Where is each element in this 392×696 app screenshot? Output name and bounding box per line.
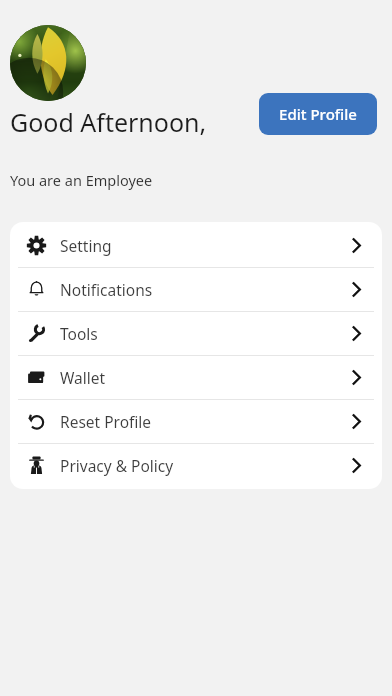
button[interactable]: Privacy & Policy xyxy=(10,444,382,487)
staticText: Good Afternoon, xyxy=(10,105,207,139)
staticText: Notifications xyxy=(60,279,153,300)
button[interactable]: Notifications xyxy=(10,268,382,311)
staticText: You are an Employee xyxy=(10,170,153,190)
staticText: Tools xyxy=(60,323,98,344)
button[interactable]: Wallet xyxy=(10,356,382,399)
staticText: Setting xyxy=(60,235,112,256)
staticText: Wallet xyxy=(60,367,106,388)
button[interactable]: Reset Profile xyxy=(10,400,382,443)
button[interactable]: Profile photo xyxy=(10,25,86,101)
staticText: Privacy & Policy xyxy=(60,455,174,476)
staticText: Reset Profile xyxy=(60,411,152,432)
button[interactable]: Edit Profile xyxy=(259,93,377,135)
button[interactable]: Setting xyxy=(10,224,382,267)
button[interactable]: Tools xyxy=(10,312,382,355)
staticText: Edit Profile xyxy=(279,104,357,124)
